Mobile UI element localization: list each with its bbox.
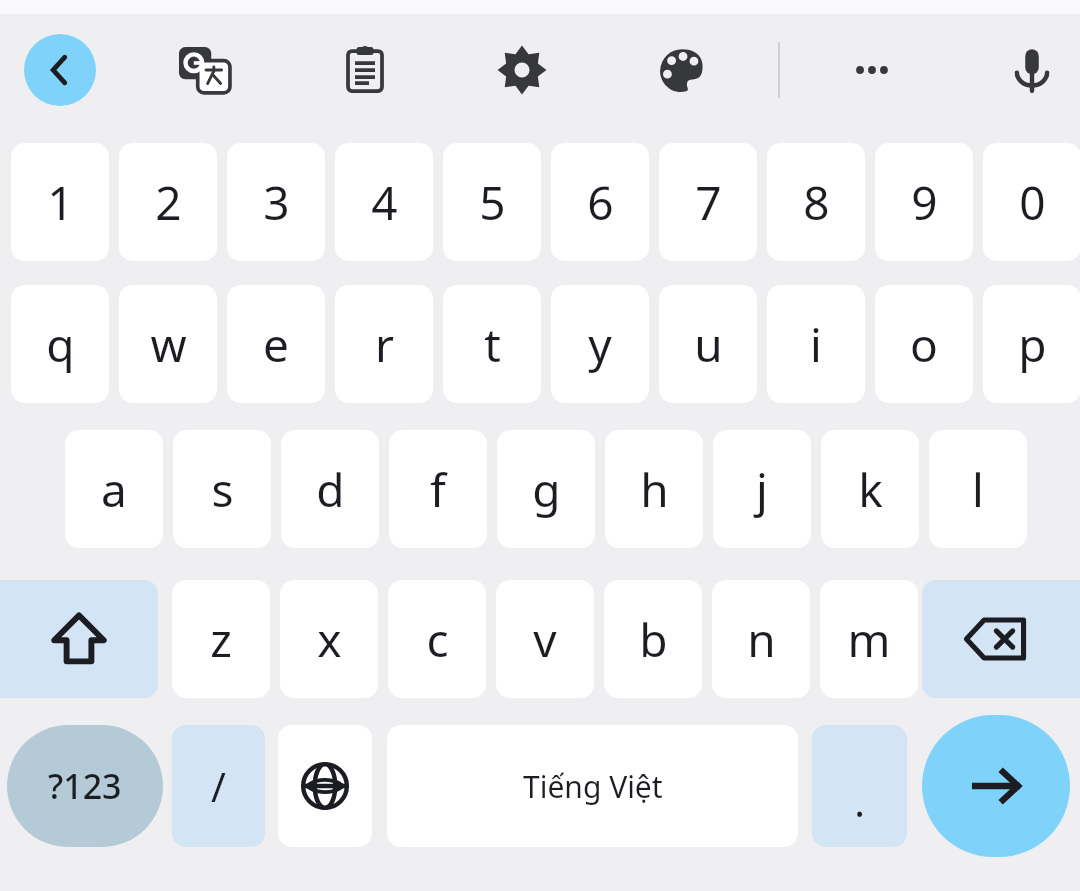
button[interactable]: e	[227, 285, 325, 403]
staticText: p	[1018, 313, 1047, 376]
staticText: o	[910, 313, 938, 376]
button[interactable]: s	[173, 430, 271, 548]
button[interactable]: b	[604, 580, 702, 698]
button[interactable]: Clipboard	[329, 34, 401, 106]
staticText: 5	[479, 171, 506, 234]
button[interactable]: /	[172, 725, 265, 847]
button[interactable]: More options	[836, 34, 908, 106]
button[interactable]: Voice input	[996, 34, 1068, 106]
button[interactable]: 5	[443, 143, 541, 261]
button[interactable]: l	[929, 430, 1027, 548]
staticText: u	[694, 313, 723, 376]
staticText: y	[588, 313, 612, 376]
button[interactable]: k	[821, 430, 919, 548]
staticText: a	[101, 458, 127, 521]
staticText: q	[46, 313, 75, 376]
button[interactable]: u	[659, 285, 757, 403]
staticText: g	[532, 458, 561, 521]
staticText: 1	[47, 171, 74, 234]
staticText: Tiếng Việt	[523, 766, 663, 807]
button[interactable]: r	[335, 285, 433, 403]
button[interactable]: Enter	[922, 715, 1070, 857]
button[interactable]: 2	[119, 143, 217, 261]
staticText: w	[150, 313, 187, 376]
button[interactable]: z	[172, 580, 270, 698]
staticText: 8	[803, 171, 830, 234]
button[interactable]: w	[119, 285, 217, 403]
button[interactable]: Backspace	[922, 580, 1080, 698]
staticText: i	[810, 313, 822, 376]
button[interactable]: i	[767, 285, 865, 403]
staticText: 4	[371, 171, 398, 234]
button[interactable]: c	[388, 580, 486, 698]
staticText: f	[430, 458, 446, 521]
staticText: n	[747, 608, 776, 671]
button[interactable]: d	[281, 430, 379, 548]
staticText: 3	[263, 171, 290, 234]
staticText: c	[426, 608, 449, 671]
button[interactable]: Translate	[169, 34, 241, 106]
button[interactable]: x	[280, 580, 378, 698]
button[interactable]: Switch language	[278, 725, 372, 847]
staticText: k	[858, 458, 883, 521]
button[interactable]: 8	[767, 143, 865, 261]
button[interactable]: v	[496, 580, 594, 698]
button[interactable]: p	[983, 285, 1080, 403]
button[interactable]: .	[812, 725, 907, 847]
button[interactable]: 1	[11, 143, 109, 261]
button[interactable]: m	[820, 580, 918, 698]
staticText: b	[639, 608, 668, 671]
button[interactable]: t	[443, 285, 541, 403]
button[interactable]: y	[551, 285, 649, 403]
button[interactable]: Tiếng Việt	[387, 725, 798, 847]
button[interactable]: o	[875, 285, 973, 403]
button[interactable]: 9	[875, 143, 973, 261]
button[interactable]: 3	[227, 143, 325, 261]
button[interactable]: g	[497, 430, 595, 548]
button[interactable]: Themes	[646, 34, 718, 106]
staticText: d	[316, 458, 345, 521]
button[interactable]: 6	[551, 143, 649, 261]
button[interactable]: Settings	[486, 34, 558, 106]
button[interactable]: j	[713, 430, 811, 548]
button[interactable]: Back	[24, 34, 96, 106]
staticText: x	[317, 608, 342, 671]
staticText: ?123	[48, 763, 122, 809]
staticText: 0	[1019, 171, 1046, 234]
staticText: l	[972, 458, 984, 521]
staticText: m	[847, 608, 891, 671]
staticText: /	[211, 759, 226, 813]
staticText: s	[211, 458, 234, 521]
staticText: 7	[695, 171, 722, 234]
staticText: j	[756, 458, 768, 521]
staticText: r	[375, 313, 394, 376]
staticText: h	[640, 458, 669, 521]
button[interactable]: 0	[983, 143, 1080, 261]
staticText: e	[263, 313, 289, 376]
staticText: 6	[587, 171, 614, 234]
staticText: 2	[155, 171, 182, 234]
button[interactable]: 7	[659, 143, 757, 261]
button[interactable]: f	[389, 430, 487, 548]
staticText: t	[484, 313, 501, 376]
button[interactable]: q	[11, 285, 109, 403]
button[interactable]: ?123	[7, 725, 163, 847]
button[interactable]: a	[65, 430, 163, 548]
staticText: .	[854, 774, 865, 828]
button[interactable]: 4	[335, 143, 433, 261]
staticText: z	[210, 608, 232, 671]
button[interactable]: h	[605, 430, 703, 548]
button[interactable]: n	[712, 580, 810, 698]
staticText: v	[533, 608, 557, 671]
staticText: 9	[911, 171, 938, 234]
button[interactable]: Shift	[0, 580, 158, 698]
